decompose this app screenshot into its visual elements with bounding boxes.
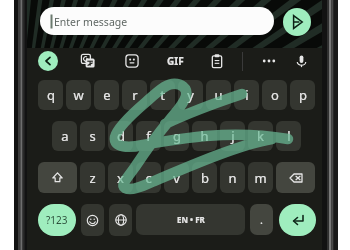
button[interactable]: Change language: [109, 204, 132, 236]
staticText: ?123: [46, 213, 68, 227]
staticText: a: [61, 127, 69, 145]
staticText: t: [160, 86, 165, 104]
button[interactable]: k: [248, 121, 273, 151]
button[interactable]: Translate: [81, 54, 95, 68]
button[interactable]: q: [38, 80, 63, 110]
button[interactable]: Enter: [279, 204, 316, 236]
button[interactable]: y: [178, 80, 203, 110]
button[interactable]: Send: [283, 8, 311, 36]
button[interactable]: z: [80, 162, 105, 193]
button[interactable]: c: [136, 162, 161, 193]
staticText: n: [228, 169, 237, 187]
staticText: r: [132, 86, 138, 104]
staticText: e: [103, 86, 111, 104]
button[interactable]: e: [94, 80, 119, 110]
button[interactable]: Backspace: [276, 162, 315, 193]
button[interactable]: b: [192, 162, 217, 193]
button[interactable]: a: [52, 121, 77, 151]
staticText: w: [73, 86, 84, 104]
button[interactable]: v: [164, 162, 189, 193]
staticText: v: [173, 169, 180, 187]
button[interactable]: x: [108, 162, 133, 193]
button[interactable]: s: [80, 121, 105, 151]
button[interactable]: Stickers: [125, 54, 139, 68]
button[interactable]: d: [108, 121, 133, 151]
staticText: o: [271, 86, 279, 104]
staticText: m: [254, 169, 267, 187]
button[interactable]: l: [276, 121, 301, 151]
staticText: c: [145, 169, 152, 187]
button[interactable]: Shift: [38, 162, 77, 193]
button[interactable]: j: [220, 121, 245, 151]
button[interactable]: t: [150, 80, 175, 110]
button[interactable]: .: [250, 204, 273, 235]
staticText: l: [287, 127, 291, 145]
button[interactable]: n: [220, 162, 245, 193]
button[interactable]: g: [164, 121, 189, 151]
button[interactable]: w: [66, 80, 91, 110]
staticText: x: [117, 169, 124, 187]
staticText: k: [257, 127, 264, 145]
button[interactable]: More options: [261, 53, 277, 69]
staticText: g: [173, 127, 181, 145]
staticText: i: [245, 86, 249, 104]
button[interactable]: h: [192, 121, 217, 151]
button[interactable]: GIF: [165, 54, 185, 68]
staticText: u: [214, 86, 223, 104]
button[interactable]: Clipboard: [210, 54, 224, 68]
staticText: h: [200, 127, 209, 145]
staticText: y: [187, 86, 194, 104]
button[interactable]: ?123: [38, 204, 76, 236]
staticText: z: [89, 169, 96, 187]
button[interactable]: f: [136, 121, 161, 151]
button[interactable]: p: [290, 80, 315, 110]
staticText: EN • FR: [177, 214, 205, 225]
button[interactable]: i: [234, 80, 259, 110]
staticText: b: [201, 169, 209, 187]
staticText: s: [89, 127, 96, 145]
staticText: Enter message: [54, 15, 128, 29]
staticText: f: [146, 127, 151, 145]
staticText: GIF: [167, 54, 184, 68]
button[interactable]: Emoji: [81, 204, 104, 236]
button[interactable]: r: [122, 80, 147, 110]
staticText: .: [260, 212, 263, 227]
button[interactable]: EN • FR: [136, 204, 245, 235]
button[interactable]: u: [206, 80, 231, 110]
button[interactable]: Enter message: [40, 7, 274, 35]
button[interactable]: Voice input: [294, 54, 309, 69]
staticText: d: [117, 127, 125, 145]
staticText: q: [47, 86, 55, 104]
button[interactable]: o: [262, 80, 287, 110]
button[interactable]: m: [248, 162, 273, 193]
button[interactable]: Back: [38, 51, 58, 71]
staticText: p: [299, 86, 307, 104]
staticText: j: [231, 127, 235, 145]
